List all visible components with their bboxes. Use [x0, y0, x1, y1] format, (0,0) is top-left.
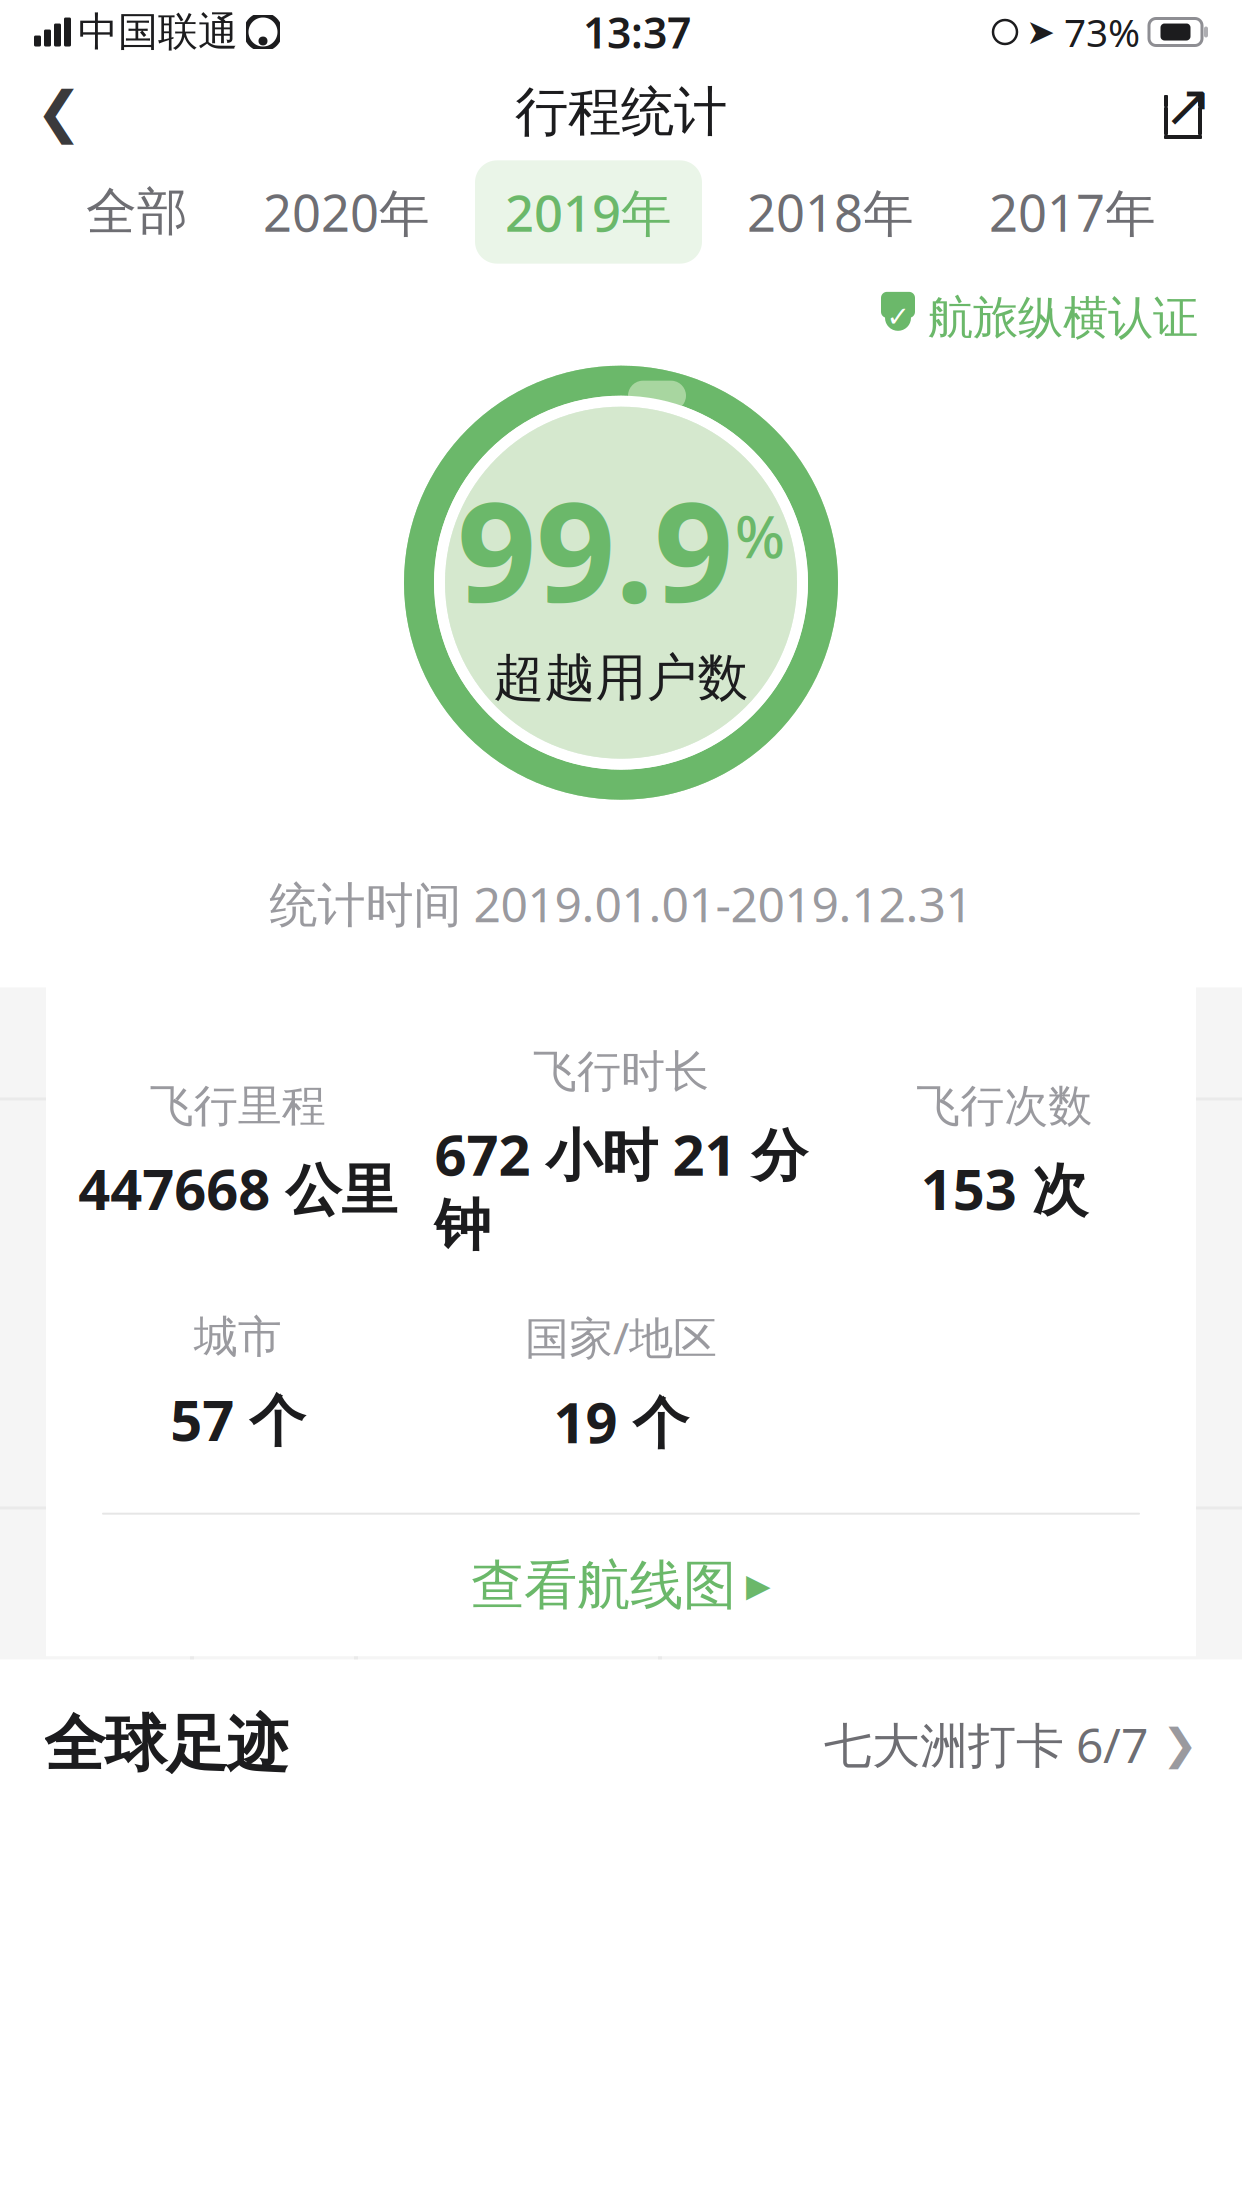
staticText: ✓	[886, 301, 909, 333]
staticText: 13:37	[583, 4, 691, 60]
button[interactable]: 2019年	[475, 160, 702, 264]
button[interactable]: 全球足迹	[0, 1659, 1242, 1829]
staticText: 统计时间 2019.01.01-2019.12.31	[269, 872, 972, 935]
staticText: 2018年	[747, 178, 914, 246]
staticText: 2019年	[505, 178, 672, 246]
staticText: 672 小时 21 分钟	[434, 1117, 807, 1260]
button[interactable]: 全部	[56, 163, 218, 261]
staticText: 飞行时长	[533, 1045, 709, 1099]
staticText: 超越用户数	[493, 647, 748, 709]
staticText: 全部	[86, 181, 188, 243]
staticText: 城市	[194, 1310, 282, 1364]
staticText: ❯	[1148, 1720, 1198, 1769]
staticText: 2020年	[263, 178, 430, 246]
button[interactable]: 查看航线图	[46, 1515, 1196, 1656]
staticText: 飞行次数	[916, 1079, 1092, 1133]
button[interactable]: 2020年	[233, 160, 460, 264]
staticText: 中国联通	[78, 7, 238, 56]
staticText: 447668 公里	[78, 1151, 397, 1225]
staticText: 七大洲打卡 6/7	[824, 1713, 1148, 1776]
staticText: 57 个	[170, 1382, 305, 1456]
staticText: ➤	[1026, 12, 1055, 52]
staticText: 2017年	[989, 178, 1156, 246]
staticText: 国家/地区	[525, 1308, 717, 1366]
button[interactable]: Share	[1138, 67, 1228, 157]
staticText: ❮	[35, 80, 82, 144]
button[interactable]: Back	[14, 67, 104, 157]
staticText: 19 个	[553, 1384, 688, 1459]
staticText: 航旅纵横认证	[928, 290, 1198, 346]
staticText: 全球足迹	[44, 1707, 288, 1782]
staticText: 飞行里程	[150, 1079, 326, 1133]
staticText: 查看航线图	[471, 1553, 736, 1618]
staticText: 153 次	[921, 1151, 1088, 1225]
button[interactable]: 2018年	[717, 160, 944, 264]
staticText: ↗	[1163, 73, 1212, 139]
staticText: 73%	[1064, 6, 1140, 58]
button[interactable]: 2017年	[959, 160, 1186, 264]
staticText: ▶	[746, 1567, 771, 1604]
staticText: 行程统计	[515, 79, 727, 145]
staticText: %	[735, 496, 785, 574]
staticText: 99.9	[457, 456, 733, 641]
